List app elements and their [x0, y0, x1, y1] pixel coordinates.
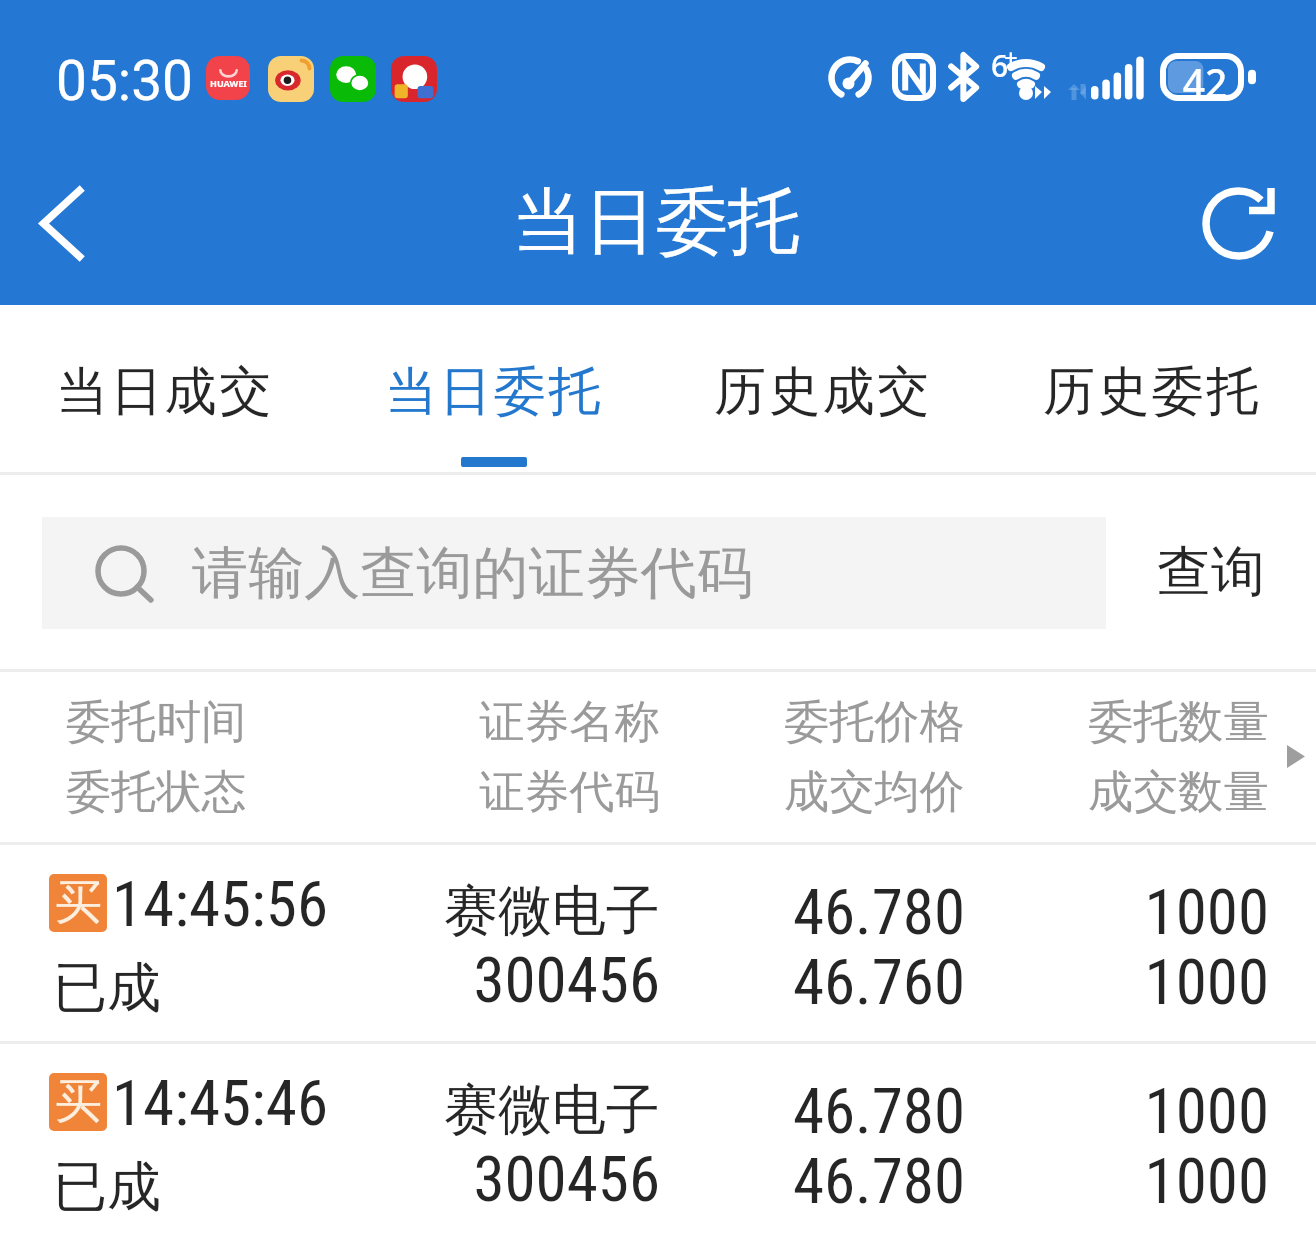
staticText: 成交数量 — [849, 764, 1269, 821]
button[interactable]: AppGallery — [206, 56, 250, 100]
staticText: 历史委托 — [1043, 359, 1261, 425]
button[interactable]: 买 — [0, 845, 1316, 1041]
button[interactable]: Back — [9, 167, 109, 267]
staticText: 14:45:46 — [112, 1067, 532, 1141]
staticText: 买 — [55, 874, 102, 931]
staticText: 委托价格 — [545, 694, 965, 751]
staticText: 成交均价 — [545, 764, 965, 821]
staticText: 赛微电子 — [240, 1076, 660, 1144]
staticText: 6 — [991, 45, 1009, 86]
staticText: 1000 — [849, 1075, 1269, 1149]
staticText: 当日委托 — [512, 177, 800, 268]
staticText: 46.760 — [545, 946, 965, 1020]
staticText: 买 — [55, 1073, 102, 1130]
staticText: 查询 — [1157, 538, 1265, 606]
button[interactable]: Weibo — [268, 56, 314, 102]
staticText: 300456 — [240, 1143, 660, 1217]
staticText: 委托状态 — [66, 764, 486, 821]
button[interactable]: 当日委托 — [329, 305, 658, 472]
staticText: 14:45:56 — [112, 868, 532, 942]
button[interactable]: 当日成交 — [0, 305, 329, 472]
button[interactable]: 历史委托 — [987, 305, 1316, 472]
button[interactable]: 请输入查询的证券代码 — [42, 517, 1106, 629]
staticText: 当日委托 — [385, 359, 603, 425]
staticText: 1000 — [849, 1145, 1269, 1219]
staticText: + — [1004, 41, 1018, 74]
button[interactable]: Refresh — [1184, 168, 1294, 278]
staticText: 委托时间 — [66, 694, 486, 751]
staticText: 委托数量 — [849, 694, 1269, 751]
button[interactable]: 买 — [0, 1044, 1316, 1235]
staticText: 42 — [1176, 56, 1234, 109]
staticText: 05:30 — [56, 49, 193, 113]
staticText: 300456 — [240, 944, 660, 1018]
staticText: 46.780 — [545, 876, 965, 950]
staticText: HUAWEI — [210, 77, 247, 89]
staticText: 请输入查询的证券代码 — [192, 538, 753, 609]
staticText: 已成 — [53, 1153, 473, 1221]
staticText: 46.780 — [545, 1075, 965, 1149]
staticText: 1000 — [849, 876, 1269, 950]
staticText: 历史成交 — [714, 359, 932, 425]
button[interactable]: WeChat — [330, 56, 376, 102]
staticText: 证券代码 — [240, 764, 660, 821]
button[interactable]: 历史成交 — [658, 305, 987, 472]
staticText: 证券名称 — [240, 694, 660, 751]
button[interactable]: JD — [391, 56, 437, 102]
staticText: 1000 — [849, 946, 1269, 1020]
staticText: 赛微电子 — [240, 877, 660, 945]
staticText: 46.780 — [545, 1145, 965, 1219]
staticText: 当日成交 — [56, 359, 274, 425]
button[interactable]: 查询 — [1136, 517, 1282, 629]
staticText: 已成 — [53, 954, 473, 1022]
